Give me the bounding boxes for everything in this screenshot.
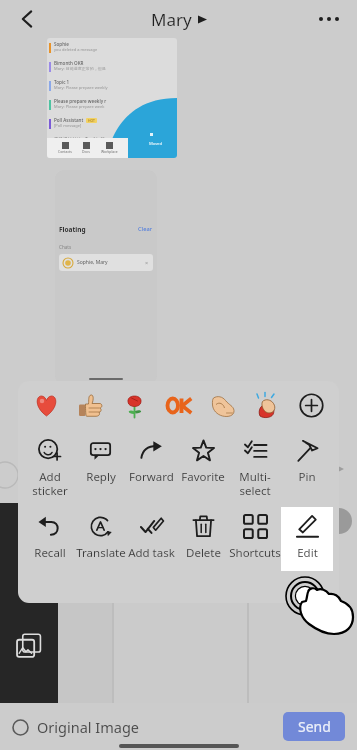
button[interactable]: Recall <box>24 507 75 571</box>
staticText: you deleted a message <box>54 47 98 52</box>
staticText: 产品设计讨论 · Sophie等 <box>54 136 105 142</box>
staticText: Favorite <box>181 469 225 485</box>
button[interactable]: Favorite <box>177 431 229 501</box>
staticText: Bimonth OKR <box>54 60 84 66</box>
staticText: [Poll message] <box>54 123 82 128</box>
staticText: Sophie <box>54 41 69 47</box>
button[interactable]: Send <box>283 712 345 741</box>
staticText: Recall <box>34 545 66 561</box>
staticText: Multi- select <box>239 469 271 498</box>
staticText: Mary: 目前进度正常的，但是 <box>54 66 106 71</box>
button[interactable]: Shortcuts <box>229 507 281 571</box>
staticText: Shortcuts <box>229 545 281 561</box>
button[interactable]: Rose <box>115 386 153 424</box>
staticText: × <box>145 259 149 266</box>
staticText: Moved <box>149 141 163 147</box>
staticText: Poll Assistant <box>54 117 84 123</box>
staticText: Send <box>298 717 331 736</box>
button[interactable]: Edit <box>281 507 333 571</box>
staticText: Sophie, Mary <box>77 259 145 266</box>
staticText: Translate <box>76 545 126 561</box>
button[interactable]: Muscle <box>204 386 242 424</box>
staticText: Forward <box>129 469 174 485</box>
staticText: Floating <box>59 225 86 234</box>
staticText: Mary <box>151 8 192 31</box>
staticText: Delete <box>186 545 221 561</box>
button[interactable]: Original Image <box>12 717 140 737</box>
button[interactable]: Pin <box>281 431 333 501</box>
button[interactable]: Delete <box>177 507 229 571</box>
staticText: Reply <box>86 469 116 485</box>
staticText: Please prepare weekly r <box>54 98 107 104</box>
button[interactable]: Multi- select <box>229 431 281 501</box>
staticText: Pin <box>298 469 316 485</box>
staticText: Workplace <box>101 149 118 154</box>
button[interactable]: Mary <box>151 8 207 31</box>
button[interactable]: More options <box>309 0 349 38</box>
staticText: Mary: Please prepare weekly <box>54 85 108 90</box>
staticText: Clear <box>138 225 153 233</box>
button[interactable]: Translate <box>75 507 126 571</box>
staticText: Original Image <box>37 717 140 737</box>
button[interactable]: OK <box>160 386 198 424</box>
staticText: Docs <box>82 149 90 154</box>
staticText: Edit <box>297 545 318 561</box>
staticText: Contacts <box>58 149 72 154</box>
button[interactable]: More reactions <box>292 386 330 424</box>
button[interactable]: Back <box>8 0 48 38</box>
button[interactable]: Forward <box>126 431 177 501</box>
button[interactable]: Heart <box>27 386 65 424</box>
staticText: HOT <box>88 118 95 123</box>
staticText: Add sticker <box>32 469 68 498</box>
staticText: Mary: Please prepare week <box>54 104 105 109</box>
staticText: Topic 1 <box>54 79 70 85</box>
staticText: Chats <box>59 244 72 250</box>
button[interactable]: Add task <box>126 507 177 571</box>
staticText: Add task <box>128 545 175 561</box>
button[interactable]: Thumbs up <box>71 386 109 424</box>
button[interactable]: Reply <box>75 431 126 501</box>
button[interactable]: Clap <box>248 386 286 424</box>
button[interactable]: Add sticker <box>24 431 75 501</box>
button[interactable]: Multiple images <box>16 633 42 659</box>
